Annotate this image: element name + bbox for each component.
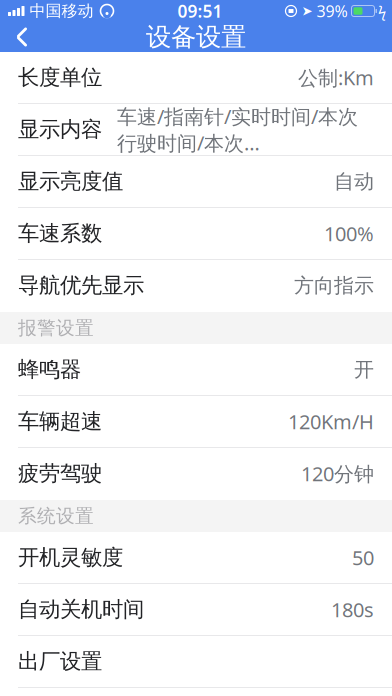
button[interactable]: 车速系数 [0, 208, 392, 260]
staticText: 50 [352, 544, 374, 571]
button[interactable]: 长度单位 [0, 52, 392, 104]
staticText: 公制:Km [298, 64, 374, 91]
staticText: 显示内容 [18, 116, 102, 143]
staticText: 39% [316, 0, 347, 22]
staticText: 中国移动 [29, 1, 93, 21]
staticText: 开机灵敏度 [18, 544, 123, 571]
staticText: 疲劳驾驶 [18, 460, 102, 487]
staticText: 车速系数 [18, 220, 102, 247]
staticText: 车速/指南针/实时时间/本次行驶时间/本次… [117, 103, 358, 156]
staticText: 出厂设置 [18, 648, 102, 675]
staticText: 系统设置 [18, 504, 94, 527]
staticText: 设备设置 [146, 21, 246, 52]
button[interactable]: 导航优先显示 [0, 260, 392, 312]
staticText: 报警设置 [18, 316, 94, 339]
staticText: 蜂鸣器 [18, 356, 81, 383]
staticText: 自动关机时间 [18, 596, 144, 623]
button[interactable]: 疲劳驾驶 [0, 448, 392, 500]
staticText: 车辆超速 [18, 408, 102, 435]
staticText: 120Km/H [288, 408, 374, 435]
staticText: 180s [331, 596, 374, 623]
button[interactable]: 车辆超速 [0, 396, 392, 448]
staticText: 09:51 [177, 0, 222, 22]
staticText: 自动 [334, 169, 374, 194]
staticText: 导航优先显示 [18, 272, 144, 299]
button[interactable]: Back [0, 22, 44, 52]
button[interactable]: 显示亮度值 [0, 156, 392, 208]
staticText: 显示亮度值 [18, 168, 123, 195]
staticText: 开 [354, 357, 374, 382]
staticText: 方向指示 [294, 273, 374, 298]
staticText: 100% [324, 220, 374, 247]
button[interactable]: 显示内容 [0, 104, 392, 156]
button[interactable]: 开机灵敏度 [0, 532, 392, 584]
button[interactable]: 蜂鸣器 [0, 344, 392, 396]
staticText: ➤ [301, 3, 312, 18]
button[interactable]: 出厂设置 [0, 636, 392, 688]
staticText: 120分钟 [301, 460, 374, 487]
button[interactable]: 自动关机时间 [0, 584, 392, 636]
staticText: 长度单位 [18, 64, 102, 91]
staticText: ϟ [378, 1, 386, 21]
